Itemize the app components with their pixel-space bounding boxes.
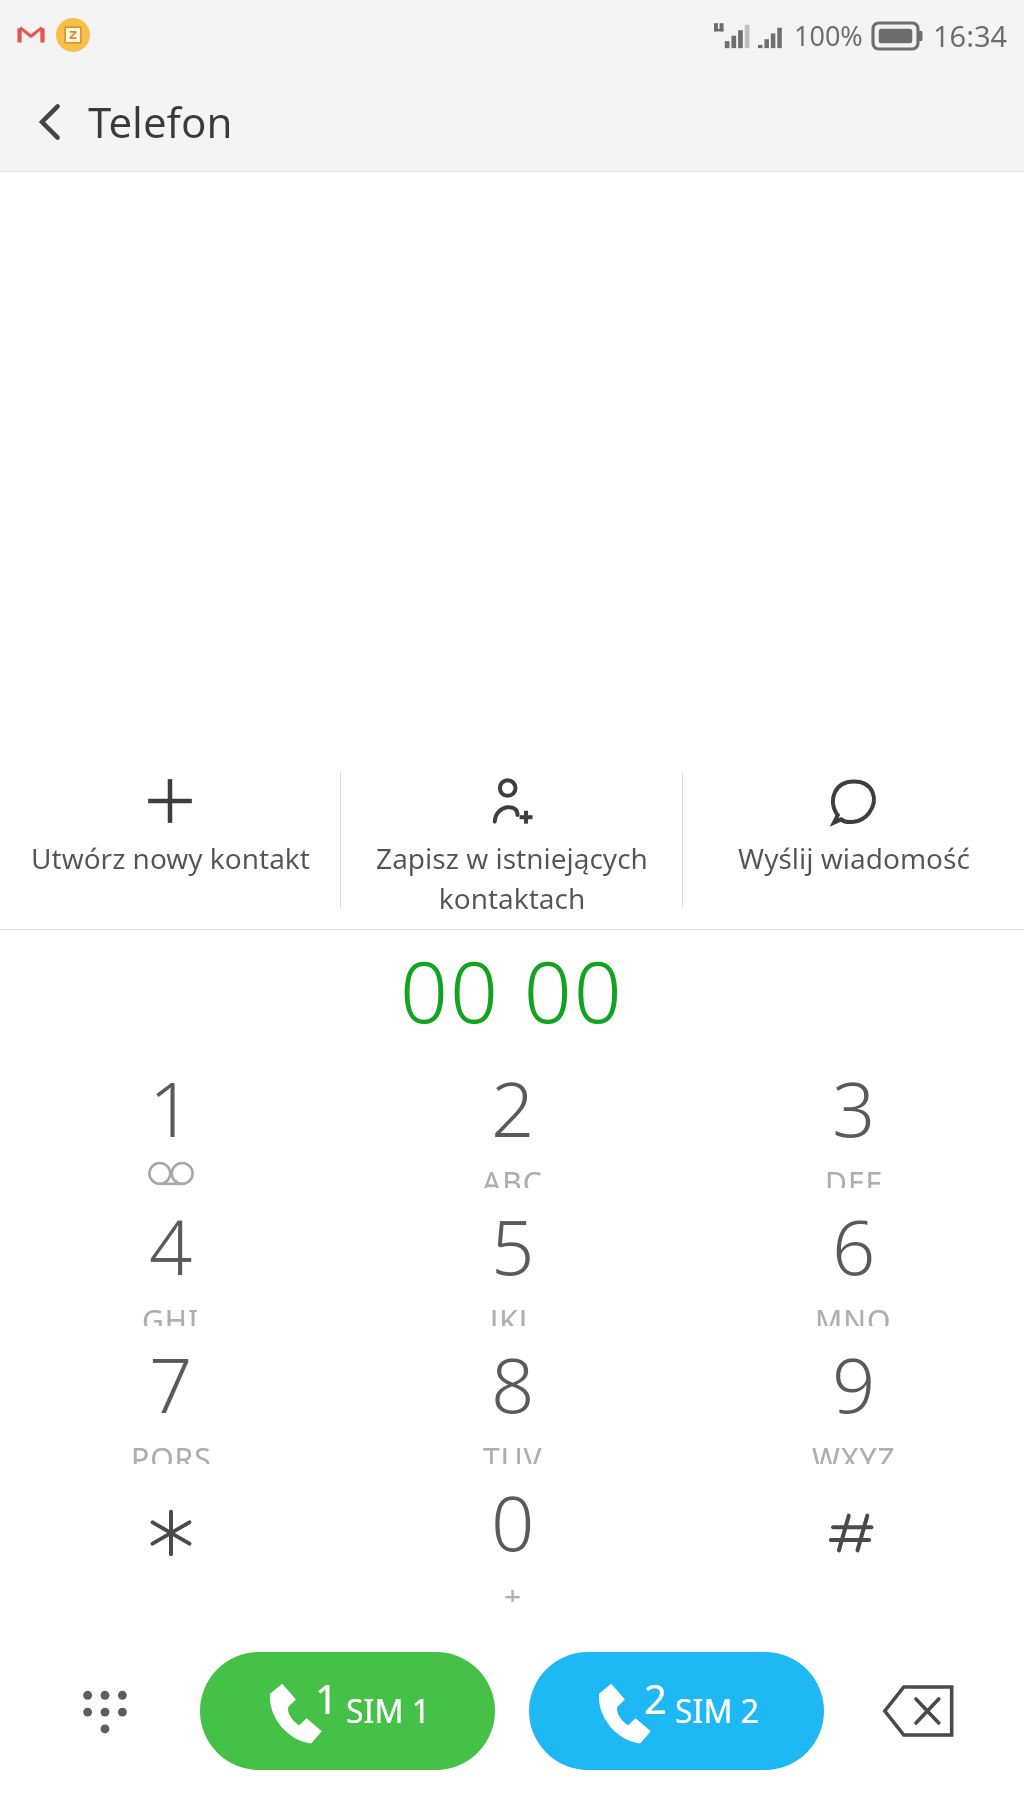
- staticText: 4: [149, 1194, 193, 1298]
- staticText: +: [504, 1576, 522, 1602]
- button[interactable]: [683, 1464, 1024, 1602]
- button[interactable]: Back: [30, 85, 239, 158]
- staticText: Utwórz nowy kontakt: [31, 839, 310, 877]
- staticText: 1: [149, 1056, 193, 1160]
- staticText: WXYZ: [812, 1438, 896, 1464]
- staticText: 00 00: [400, 933, 624, 1047]
- button[interactable]: 5: [342, 1188, 683, 1326]
- staticText: 8: [491, 1332, 535, 1436]
- staticText: 2: [491, 1056, 535, 1160]
- staticText: TUV: [483, 1438, 543, 1464]
- staticText: MNO: [815, 1300, 892, 1326]
- button[interactable]: 1: [200, 1652, 495, 1770]
- button[interactable]: Zapisz w istniejących kontaktach: [341, 751, 682, 929]
- button[interactable]: Utwórz nowy kontakt: [0, 751, 340, 929]
- button[interactable]: 1: [0, 1050, 342, 1188]
- staticText: 16:34: [933, 16, 1008, 55]
- staticText: 6: [832, 1194, 876, 1298]
- button[interactable]: Keypad: [10, 1602, 200, 1820]
- staticText: 7: [149, 1332, 193, 1436]
- button[interactable]: 2: [342, 1050, 683, 1188]
- button[interactable]: 7: [0, 1326, 342, 1464]
- button[interactable]: 2: [529, 1652, 824, 1770]
- button[interactable]: 9: [683, 1326, 1024, 1464]
- staticText: 3: [832, 1056, 876, 1160]
- button[interactable]: 4: [0, 1188, 342, 1326]
- button[interactable]: 3: [683, 1050, 1024, 1188]
- button[interactable]: 0: [342, 1464, 683, 1602]
- staticText: SIM 1: [346, 1689, 431, 1733]
- staticText: 5: [491, 1194, 535, 1298]
- staticText: 100%: [794, 17, 863, 54]
- button[interactable]: Wyślij wiadomość: [683, 751, 1024, 929]
- button[interactable]: 6: [683, 1188, 1024, 1326]
- staticText: 9: [832, 1332, 876, 1436]
- staticText: 2: [644, 1671, 667, 1725]
- staticText: 1: [315, 1671, 338, 1725]
- staticText: DEF: [825, 1162, 883, 1188]
- button[interactable]: [0, 1464, 342, 1602]
- staticText: Zapisz w istniejących kontaktach: [376, 839, 648, 918]
- staticText: Wyślij wiadomość: [738, 839, 970, 877]
- button[interactable]: Backspace: [824, 1602, 1014, 1820]
- staticText: GHI: [142, 1300, 200, 1326]
- button[interactable]: 8: [342, 1326, 683, 1464]
- staticText: PQRS: [131, 1438, 212, 1464]
- staticText: ABC: [482, 1162, 543, 1188]
- staticText: SIM 2: [675, 1689, 760, 1733]
- staticText: 0: [491, 1470, 535, 1574]
- staticText: Telefon: [88, 93, 233, 150]
- staticText: JKL: [490, 1300, 536, 1326]
